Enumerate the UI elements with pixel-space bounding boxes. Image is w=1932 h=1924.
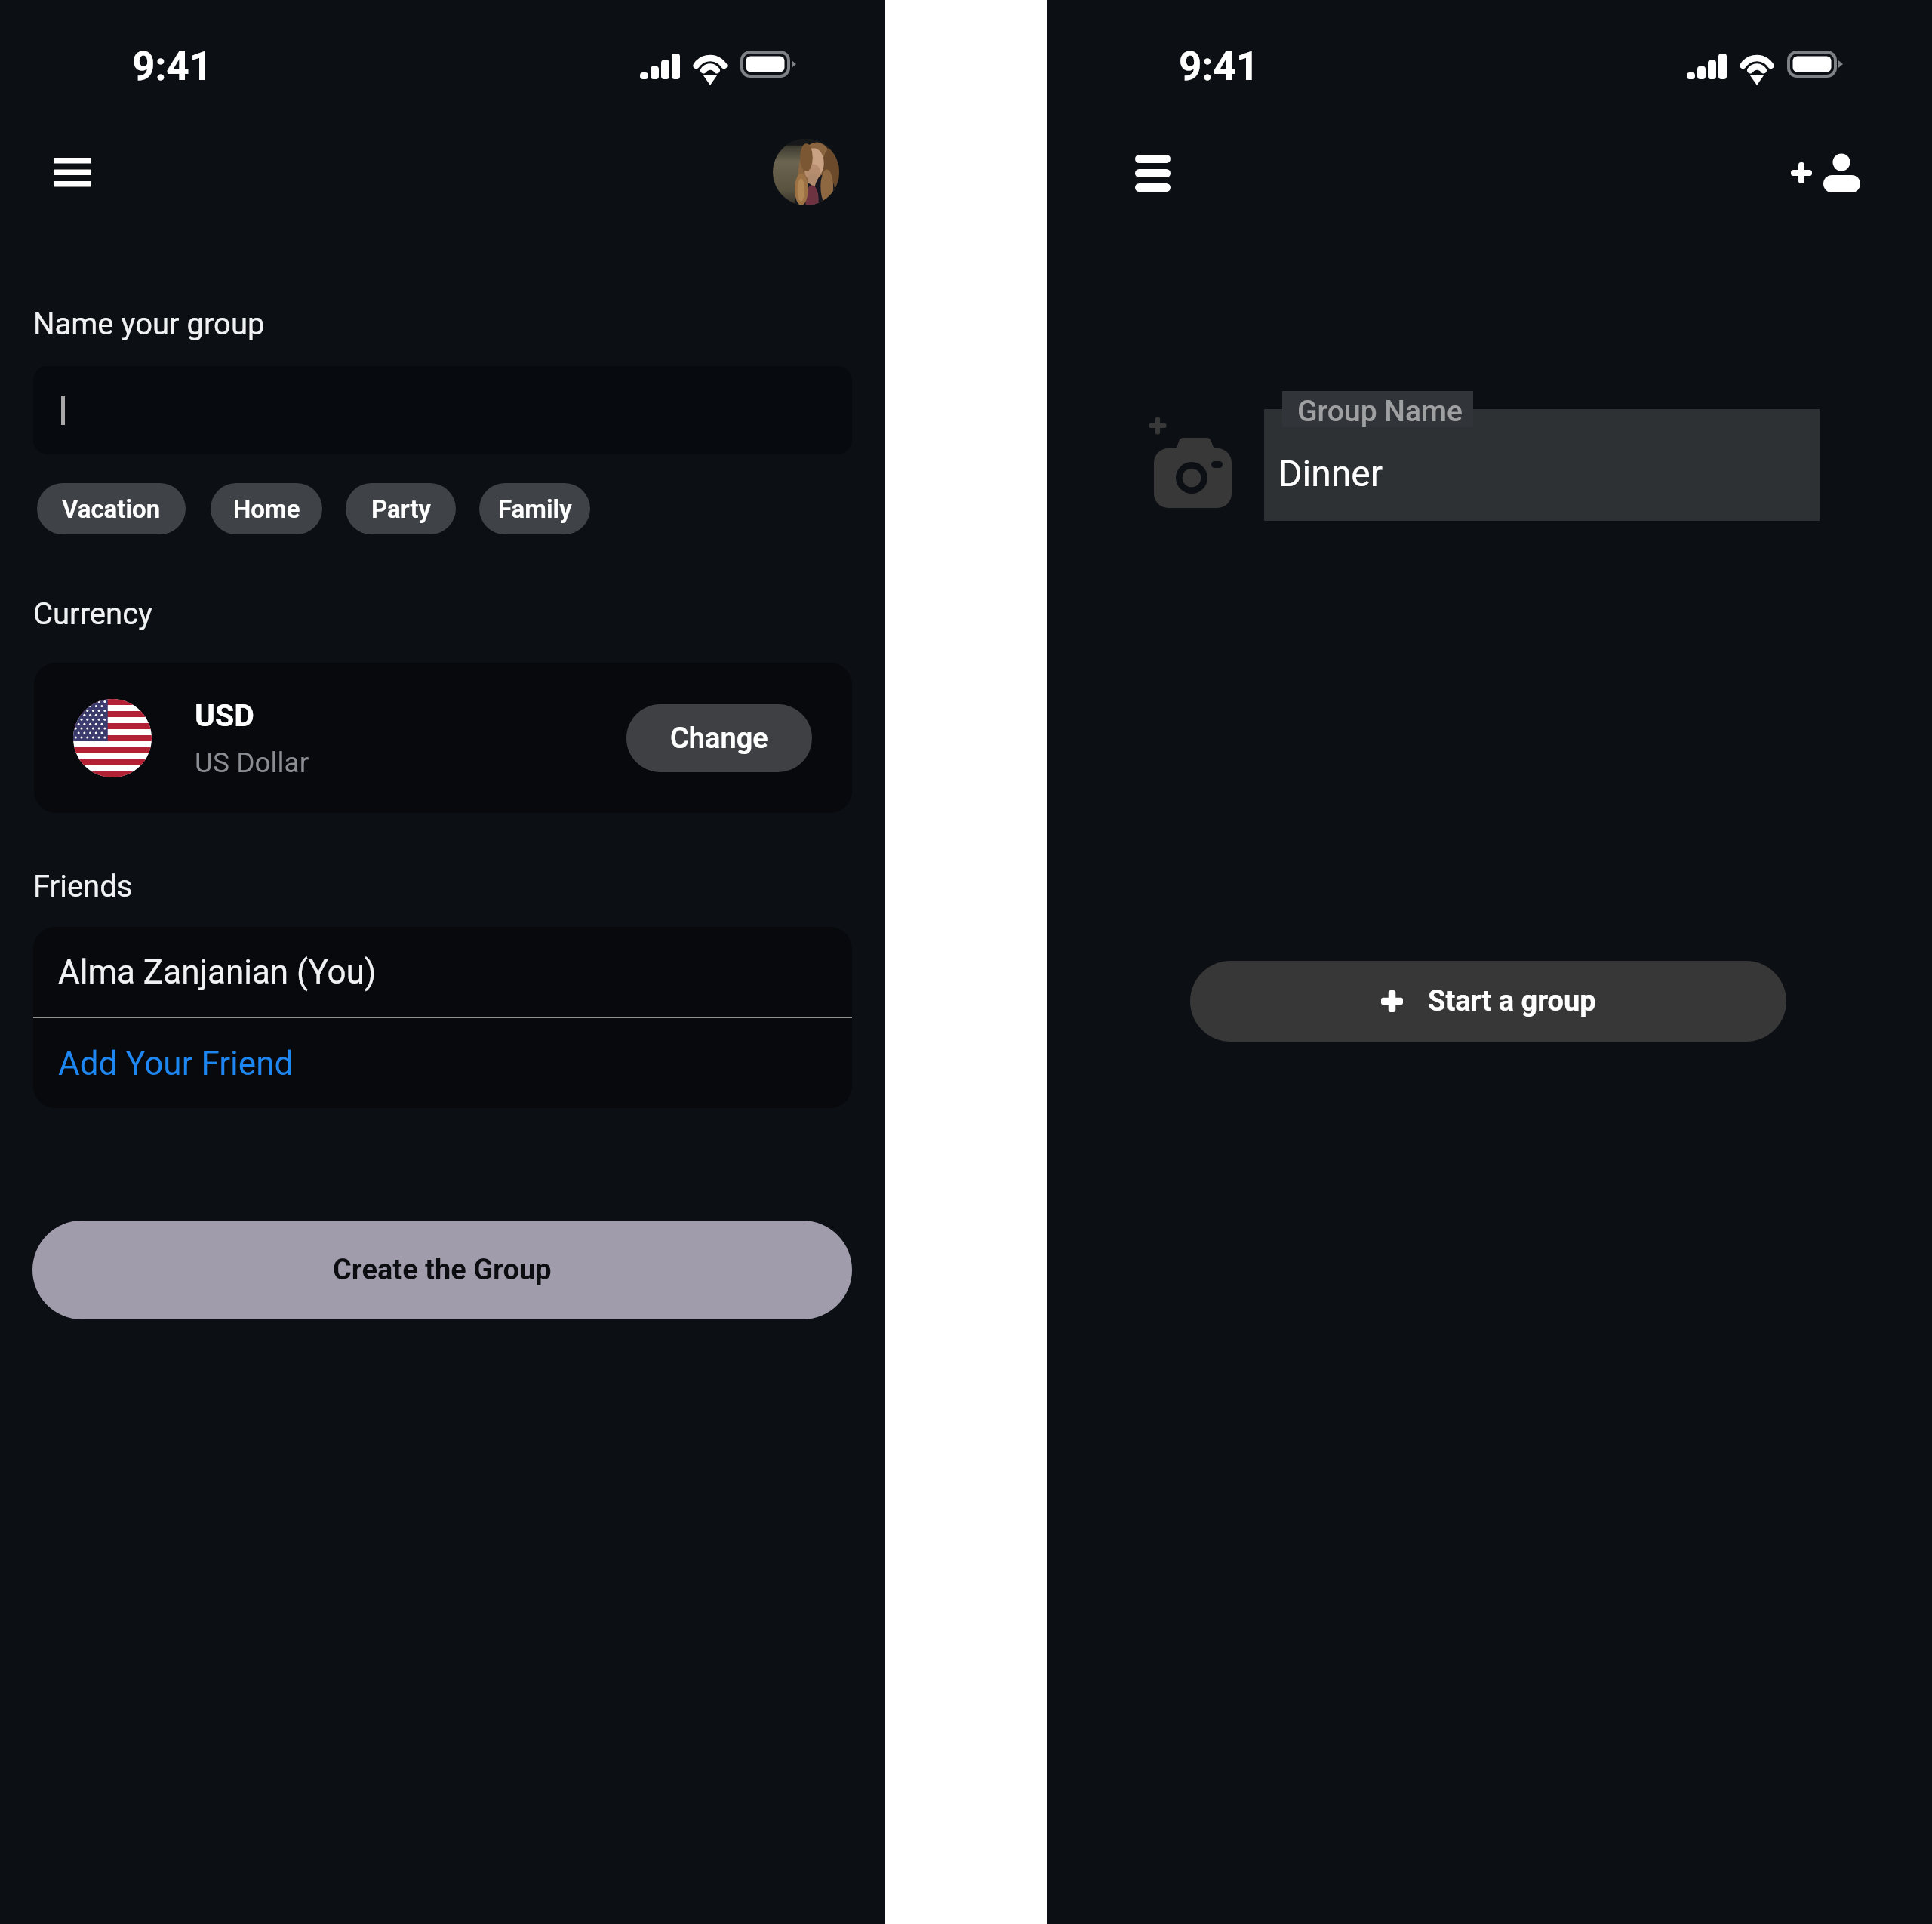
button[interactable]: Alma Zanjanian (You) — [33, 927, 852, 1017]
staticText: Add Your Friend — [58, 1044, 294, 1083]
staticText: Friends — [33, 869, 133, 904]
button[interactable]: USD — [34, 663, 852, 813]
staticText: Dinner — [1278, 452, 1383, 494]
button[interactable]: Add Your Friend — [33, 1018, 852, 1108]
staticText: Party — [371, 494, 431, 524]
staticText: Name your group — [33, 306, 265, 342]
staticText: Alma Zanjanian (You) — [58, 953, 377, 992]
button[interactable]: Menu — [42, 148, 103, 196]
button[interactable]: Start a group — [1190, 961, 1786, 1042]
button[interactable]: Dinner — [1264, 409, 1820, 521]
button[interactable]: Add person — [1779, 140, 1869, 208]
staticText: Vacation — [62, 494, 161, 524]
button[interactable]: Family — [479, 483, 590, 534]
staticText: Create the Group — [333, 1253, 552, 1287]
button[interactable]: Vacation — [37, 483, 186, 534]
button[interactable] — [33, 366, 852, 454]
staticText: Start a group — [1428, 984, 1596, 1018]
staticText: Home — [233, 494, 300, 524]
staticText: Currency — [33, 596, 152, 632]
button[interactable]: Home — [211, 483, 322, 534]
button[interactable]: Add photo — [1149, 414, 1235, 512]
button[interactable]: Menu — [1124, 143, 1183, 204]
staticText: US Dollar — [195, 747, 309, 779]
staticText: 9:41 — [132, 43, 213, 90]
button[interactable]: Create the Group — [32, 1221, 852, 1319]
staticText: USD — [195, 697, 254, 734]
staticText: Change — [670, 722, 768, 756]
button[interactable]: Party — [346, 483, 456, 534]
staticText: Group Name — [1297, 394, 1463, 429]
staticText: 9:41 — [1179, 43, 1260, 90]
button[interactable]: Profile — [773, 139, 839, 205]
button[interactable]: Change — [626, 704, 812, 772]
staticText: Family — [498, 494, 572, 524]
